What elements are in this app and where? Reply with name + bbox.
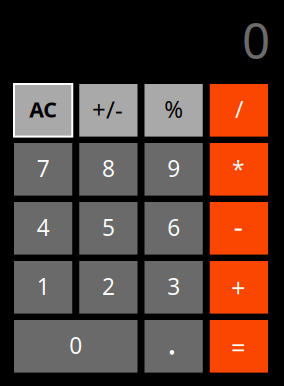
staticText: AC xyxy=(29,95,57,123)
staticText: * xyxy=(232,154,244,184)
button[interactable]: Divide xyxy=(210,84,268,137)
button[interactable]: 8 xyxy=(79,143,137,196)
button[interactable]: 7 xyxy=(14,143,72,196)
staticText: 0 xyxy=(242,6,270,72)
staticText: +/- xyxy=(92,93,123,125)
staticText: 2 xyxy=(102,271,115,301)
button[interactable]: 4 xyxy=(14,202,72,255)
staticText: 0 xyxy=(69,330,82,360)
button[interactable]: All clear xyxy=(14,84,72,137)
button[interactable]: Plus minus xyxy=(79,84,137,137)
button[interactable]: 1 xyxy=(14,261,72,314)
button[interactable]: Plus xyxy=(210,261,268,314)
staticText: % xyxy=(164,94,183,124)
button[interactable]: Minus xyxy=(210,202,268,255)
staticText: 9 xyxy=(167,153,180,183)
button[interactable]: Percent xyxy=(144,84,203,137)
button[interactable]: 2 xyxy=(79,261,137,314)
button[interactable]: 0 xyxy=(14,320,137,373)
staticText: 3 xyxy=(167,271,180,301)
staticText: + xyxy=(231,270,245,304)
staticText: 4 xyxy=(37,212,50,242)
staticText: 6 xyxy=(167,212,180,242)
button[interactable]: 5 xyxy=(79,202,137,255)
button[interactable]: 3 xyxy=(144,261,203,314)
button[interactable]: Equals xyxy=(210,320,268,373)
staticText: - xyxy=(233,207,242,246)
staticText: 5 xyxy=(102,212,115,242)
staticText: 7 xyxy=(37,153,50,183)
staticText: / xyxy=(235,94,243,124)
button[interactable]: 9 xyxy=(144,143,203,196)
staticText: 1 xyxy=(37,271,50,301)
button[interactable]: Decimal point xyxy=(144,320,203,373)
staticText: 8 xyxy=(102,153,115,183)
button[interactable]: 6 xyxy=(144,202,203,255)
staticText: = xyxy=(231,330,245,364)
button[interactable]: Multiply xyxy=(210,143,268,196)
staticText: . xyxy=(167,318,176,364)
